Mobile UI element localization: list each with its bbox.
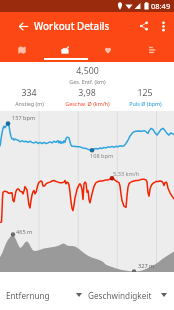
staticText: 08:49 <box>151 1 171 11</box>
button[interactable]: Entfernung <box>0 280 87 310</box>
staticText: 327 m <box>138 262 155 270</box>
staticText: Geschw. Ø (km/h) <box>65 100 110 107</box>
staticText: 5,33 km/h <box>113 170 140 178</box>
staticText: Entfernung <box>6 290 50 301</box>
staticText: 334 <box>21 87 37 99</box>
button[interactable]: Statistics <box>130 40 174 62</box>
button[interactable]: More options <box>153 12 174 40</box>
button[interactable]: Charts <box>43 40 86 62</box>
staticText: 157 bpm <box>12 114 36 122</box>
button[interactable]: Heart rate <box>86 40 130 62</box>
staticText: 125 <box>137 87 153 99</box>
button[interactable]: Back <box>11 12 35 40</box>
staticText: 4,500 <box>76 65 99 77</box>
staticText: 465 m <box>16 228 33 236</box>
button[interactable]: Share <box>133 12 155 40</box>
staticText: 108 bpm <box>90 152 114 160</box>
button[interactable]: Map <box>0 40 43 62</box>
staticText: Geschwindigkeit <box>88 290 152 301</box>
staticText: 3,98 <box>78 87 96 99</box>
staticText: Anstieg (m) <box>15 100 44 107</box>
staticText: Ges. Entf. (km) <box>69 78 106 85</box>
button[interactable]: Geschwindigkeit <box>85 280 174 310</box>
staticText: Workout Details <box>34 20 110 33</box>
staticText: Puls Ø (bpm) <box>129 100 162 107</box>
